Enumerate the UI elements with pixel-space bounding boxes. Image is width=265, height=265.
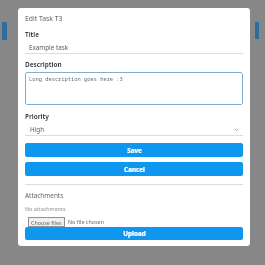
staticText: Priority xyxy=(25,112,49,121)
staticText: Choose files xyxy=(31,219,62,226)
staticText: Description xyxy=(25,60,62,69)
staticText: Example task xyxy=(29,43,69,52)
button[interactable]: Cancel xyxy=(25,162,243,176)
staticText: No attachments xyxy=(25,205,66,212)
other: Open priority dropdown xyxy=(234,127,239,132)
staticText: Edit Task T3 xyxy=(25,14,63,23)
staticText: No file chosen xyxy=(68,218,104,225)
staticText: Long description goes here :3 xyxy=(29,75,123,82)
staticText: Title xyxy=(25,30,40,39)
staticText: High xyxy=(30,125,45,134)
button[interactable]: Upload xyxy=(25,227,243,240)
button[interactable]: Long description goes here :3 xyxy=(25,72,243,105)
staticText: Save xyxy=(127,146,142,155)
staticText: Attachments xyxy=(25,191,64,200)
staticText: Upload xyxy=(123,229,146,238)
staticText: Cancel xyxy=(124,165,145,174)
button[interactable]: Choose files xyxy=(28,216,104,227)
button[interactable]: High xyxy=(25,124,243,135)
button[interactable]: Example task xyxy=(25,42,243,53)
button[interactable]: Save xyxy=(25,143,243,157)
